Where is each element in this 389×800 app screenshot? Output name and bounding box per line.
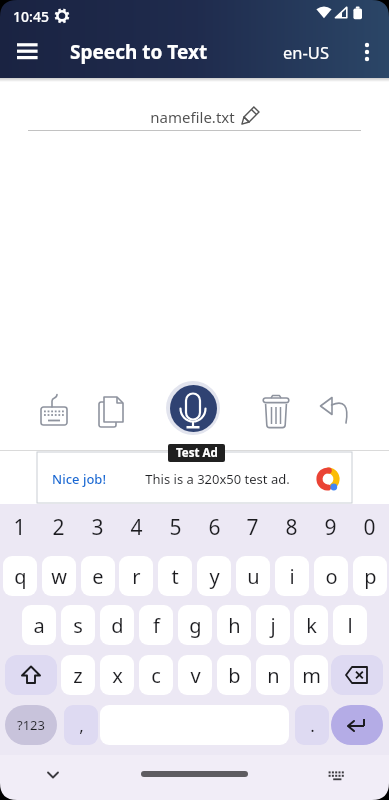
button[interactable]: d bbox=[100, 605, 134, 645]
staticText: ?123 bbox=[17, 716, 45, 734]
staticText: 10:45 bbox=[13, 7, 49, 26]
button[interactable]: en-US bbox=[280, 38, 332, 66]
button[interactable] bbox=[355, 38, 379, 66]
button[interactable]: w bbox=[42, 556, 76, 596]
staticText: s bbox=[73, 612, 83, 639]
button[interactable]: namefile.txt bbox=[120, 105, 265, 129]
button[interactable] bbox=[15, 42, 41, 62]
button[interactable] bbox=[325, 766, 349, 786]
staticText: k bbox=[306, 612, 317, 639]
button[interactable]: k bbox=[294, 605, 328, 645]
staticText: z bbox=[73, 662, 83, 689]
staticText: 5 bbox=[169, 513, 182, 542]
button[interactable]: n bbox=[256, 655, 290, 695]
staticText: h bbox=[228, 612, 241, 639]
button[interactable]: 3 bbox=[78, 505, 117, 549]
staticText: w bbox=[51, 563, 67, 590]
staticText: o bbox=[325, 563, 338, 590]
button[interactable]: g bbox=[178, 605, 212, 645]
staticText: d bbox=[111, 612, 124, 639]
staticText: 9 bbox=[324, 513, 337, 542]
button[interactable]: , bbox=[64, 705, 98, 745]
button[interactable]: 2 bbox=[39, 505, 78, 549]
staticText: t bbox=[171, 563, 179, 590]
staticText: g bbox=[189, 612, 202, 639]
button[interactable] bbox=[331, 705, 383, 745]
staticText: n bbox=[267, 662, 280, 689]
staticText: f bbox=[153, 612, 160, 639]
button[interactable]: m bbox=[294, 655, 328, 695]
staticText: Test Ad bbox=[176, 445, 218, 461]
button[interactable] bbox=[37, 452, 352, 503]
staticText: en-US bbox=[283, 41, 329, 63]
staticText: p bbox=[364, 563, 377, 590]
button[interactable]: 0 bbox=[350, 505, 389, 549]
button[interactable]: i bbox=[275, 556, 309, 596]
button[interactable]: Nice job! bbox=[48, 468, 110, 490]
staticText: 1 bbox=[13, 513, 26, 542]
button[interactable]: 5 bbox=[156, 505, 195, 549]
button[interactable]: 7 bbox=[233, 505, 272, 549]
button[interactable]: t bbox=[158, 556, 192, 596]
staticText: Nice job! bbox=[52, 470, 106, 488]
button[interactable] bbox=[260, 393, 292, 431]
button[interactable]: f bbox=[139, 605, 173, 645]
button[interactable]: x bbox=[100, 655, 134, 695]
staticText: 6 bbox=[208, 513, 221, 542]
button[interactable]: y bbox=[197, 556, 231, 596]
staticText: , bbox=[79, 714, 84, 737]
staticText: i bbox=[289, 563, 295, 590]
staticText: m bbox=[302, 662, 321, 689]
button[interactable]: j bbox=[256, 605, 290, 645]
staticText: c bbox=[151, 662, 161, 689]
button[interactable] bbox=[166, 381, 220, 435]
button[interactable]: p bbox=[353, 556, 387, 596]
staticText: 4 bbox=[130, 513, 143, 542]
button[interactable] bbox=[38, 390, 70, 430]
staticText: . bbox=[310, 714, 315, 737]
button[interactable]: 6 bbox=[195, 505, 234, 549]
button[interactable]: c bbox=[139, 655, 173, 695]
staticText: y bbox=[209, 563, 220, 590]
button[interactable]: q bbox=[3, 556, 37, 596]
staticText: u bbox=[247, 563, 260, 590]
staticText: Speech to Text bbox=[70, 39, 208, 65]
button[interactable] bbox=[141, 771, 248, 777]
staticText: v bbox=[190, 662, 201, 689]
button[interactable] bbox=[331, 655, 383, 695]
button[interactable] bbox=[96, 393, 126, 429]
staticText: r bbox=[132, 563, 141, 590]
button[interactable]: 1 bbox=[0, 505, 39, 549]
button[interactable]: o bbox=[314, 556, 348, 596]
button[interactable]: 8 bbox=[272, 505, 311, 549]
staticText: q bbox=[14, 563, 27, 590]
button[interactable]: . bbox=[295, 705, 329, 745]
staticText: 7 bbox=[246, 513, 259, 542]
button[interactable]: r bbox=[119, 556, 153, 596]
button[interactable]: a bbox=[22, 605, 56, 645]
staticText: 3 bbox=[91, 513, 104, 542]
button[interactable] bbox=[42, 766, 64, 784]
button[interactable]: ?123 bbox=[5, 705, 57, 745]
button[interactable]: u bbox=[236, 556, 270, 596]
button[interactable]: z bbox=[61, 655, 95, 695]
staticText: b bbox=[228, 662, 241, 689]
button[interactable]: s bbox=[61, 605, 95, 645]
button[interactable]: e bbox=[81, 556, 115, 596]
button[interactable]: h bbox=[217, 605, 251, 645]
button[interactable]: b bbox=[217, 655, 251, 695]
button[interactable]: 4 bbox=[117, 505, 156, 549]
staticText: a bbox=[33, 612, 45, 639]
staticText: j bbox=[270, 612, 276, 639]
staticText: namefile.txt bbox=[150, 107, 235, 127]
staticText: 8 bbox=[285, 513, 298, 542]
button[interactable] bbox=[317, 393, 351, 427]
staticText: This is a 320x50 test ad. bbox=[145, 470, 290, 488]
button[interactable] bbox=[5, 655, 57, 695]
staticText: e bbox=[92, 563, 104, 590]
button[interactable]: 9 bbox=[311, 505, 350, 549]
button[interactable]: v bbox=[178, 655, 212, 695]
staticText: 0 bbox=[363, 513, 376, 542]
button[interactable]: l bbox=[333, 605, 367, 645]
